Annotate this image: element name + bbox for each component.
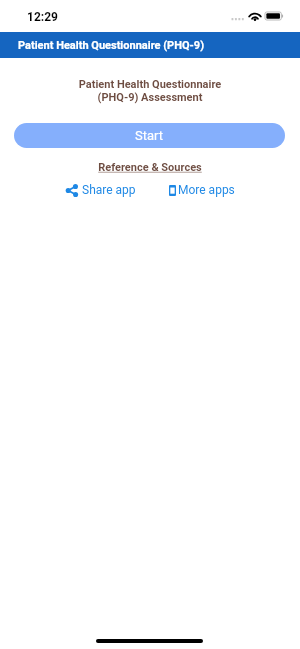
staticText: Patient Health Questionnaire (PHQ-9) xyxy=(18,39,205,52)
button[interactable]: More apps xyxy=(169,183,235,197)
button[interactable]: Start xyxy=(14,123,285,148)
staticText: Patient Health Questionnaire (PHQ-9) Ass… xyxy=(0,78,300,104)
staticText: More apps xyxy=(178,183,235,197)
staticText: Share app xyxy=(82,183,136,197)
button[interactable]: Reference & Sources xyxy=(0,161,300,174)
button[interactable]: Share app xyxy=(65,183,136,197)
staticText: 12:29 xyxy=(27,10,58,24)
other: Share app xyxy=(65,184,78,197)
other: More apps xyxy=(169,185,176,196)
staticText: Start xyxy=(135,128,164,143)
